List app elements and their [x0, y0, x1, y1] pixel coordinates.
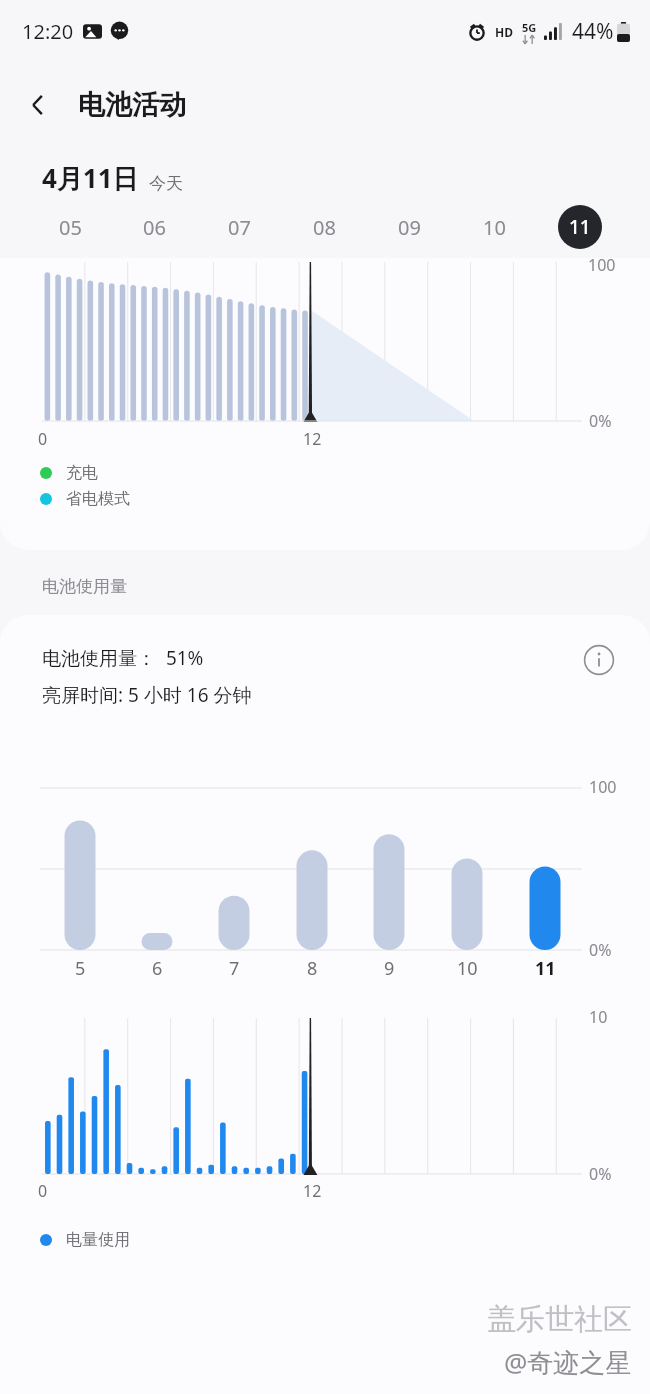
- button[interactable]: 08: [282, 196, 367, 258]
- button[interactable]: 电池使用量： 51%: [0, 615, 650, 708]
- staticText: 0%: [589, 410, 612, 432]
- staticText: 100: [589, 776, 617, 798]
- staticText: @奇迹之星: [504, 1344, 632, 1380]
- staticText: 电池使用量: [42, 576, 127, 597]
- staticText: 亮屏时间: 5 小时 16 分钟: [42, 682, 252, 708]
- button[interactable]: 100: [0, 258, 650, 550]
- staticText: 10: [589, 1006, 608, 1028]
- staticText: 11: [569, 214, 591, 240]
- staticText: 省电模式: [66, 489, 130, 509]
- staticText: HD: [495, 24, 513, 40]
- staticText: 电池活动: [78, 88, 186, 122]
- staticText: 0%: [589, 939, 612, 961]
- staticText: 44%: [572, 17, 614, 46]
- staticText: 盖乐世社区: [487, 1301, 632, 1338]
- button[interactable]: 信息: [580, 641, 618, 679]
- staticText: 5: [75, 956, 86, 981]
- staticText: 07: [228, 214, 251, 241]
- staticText: 6: [152, 956, 163, 981]
- staticText: 充电: [66, 463, 98, 483]
- staticText: 0: [38, 1180, 48, 1202]
- staticText: 12:20: [22, 18, 74, 45]
- button[interactable]: 06: [112, 196, 197, 258]
- staticText: 7: [229, 956, 240, 981]
- staticText: 8: [307, 956, 318, 981]
- button[interactable]: 10: [452, 196, 537, 258]
- staticText: 09: [398, 214, 421, 241]
- staticText: 08: [313, 214, 336, 241]
- staticText: 10: [483, 214, 506, 241]
- button[interactable]: 09: [367, 196, 452, 258]
- staticText: 今天: [149, 173, 183, 194]
- staticText: 11: [535, 956, 556, 981]
- staticText: 9: [384, 956, 395, 981]
- button[interactable]: 返回: [12, 79, 64, 131]
- staticText: 5G: [522, 20, 537, 35]
- staticText: 0: [38, 428, 48, 450]
- staticText: 12: [303, 428, 322, 450]
- staticText: 100: [588, 258, 616, 276]
- staticText: 12: [303, 1180, 322, 1202]
- staticText: 06: [143, 214, 166, 241]
- staticText: 10: [457, 956, 478, 981]
- staticText: 4月11日: [42, 160, 139, 196]
- button[interactable]: 05: [28, 196, 112, 258]
- staticText: 电量使用: [66, 1230, 130, 1250]
- button[interactable]: 07: [197, 196, 282, 258]
- button[interactable]: 11: [537, 196, 622, 258]
- staticText: 05: [59, 214, 82, 241]
- staticText: 0%: [589, 1163, 612, 1185]
- staticText: 电池使用量： 51%: [42, 645, 204, 671]
